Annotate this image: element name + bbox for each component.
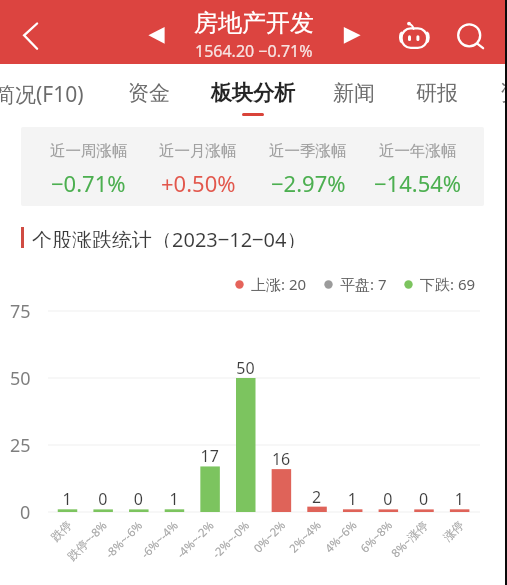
staticText: 新闻	[333, 80, 375, 106]
staticText: −14.54%	[374, 168, 462, 198]
button[interactable]: Next sector	[336, 19, 369, 52]
button[interactable]: 研报	[416, 64, 458, 116]
button[interactable]: 上涨: 20	[235, 274, 307, 294]
button[interactable]: Search	[452, 16, 490, 54]
staticText: 简况(F10)	[0, 80, 84, 109]
staticText: 上涨: 20	[251, 274, 307, 294]
button[interactable]: Back	[6, 14, 50, 58]
button[interactable]: 平盘: 7	[324, 274, 387, 294]
button[interactable]: AI assistant	[396, 16, 434, 54]
button[interactable]: 简况(F10)	[0, 64, 84, 116]
staticText: 研报	[416, 80, 458, 106]
staticText: 近一周涨幅	[50, 141, 128, 161]
button[interactable]: 新闻	[333, 64, 375, 116]
staticText: 板块分析	[211, 80, 295, 106]
staticText: 个股涨跌统计（2023‒12‒04）	[32, 226, 307, 248]
button[interactable]: 板块分析	[211, 64, 295, 116]
staticText: 房地产开发	[194, 8, 314, 38]
staticText: +0.50%	[161, 168, 236, 198]
staticText: −2.97%	[271, 168, 346, 198]
staticText: 资讯	[500, 80, 507, 106]
button[interactable]: 个股涨跌统计（2023‒12‒04）	[21, 226, 307, 248]
staticText: 近一年涨幅	[379, 141, 457, 161]
staticText: 近一季涨幅	[269, 141, 347, 161]
staticText: −0.71%	[51, 168, 126, 198]
staticText: 平盘: 7	[340, 274, 387, 294]
button[interactable]: 资讯	[500, 64, 507, 116]
staticText: 近一月涨幅	[159, 141, 237, 161]
button[interactable]: 资金	[128, 64, 170, 116]
staticText: 下跌: 69	[420, 274, 476, 294]
button[interactable]: Previous sector	[140, 19, 173, 52]
staticText: 资金	[128, 80, 170, 106]
button[interactable]: 下跌: 69	[404, 274, 476, 294]
staticText: 1564.20 −0.71%	[195, 40, 313, 62]
